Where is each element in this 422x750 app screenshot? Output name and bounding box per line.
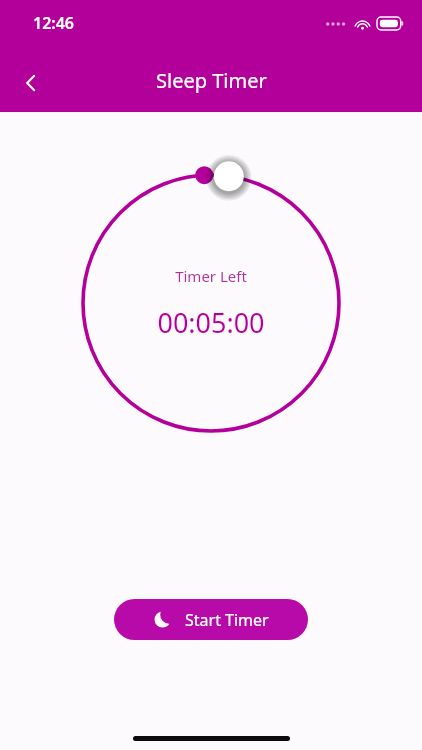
staticText: 12:46 xyxy=(33,12,75,34)
staticText: Sleep Timer xyxy=(156,67,267,94)
staticText: Start Timer xyxy=(185,609,269,631)
staticText: 00:05:00 xyxy=(157,304,265,341)
button[interactable]: Start Timer xyxy=(114,599,308,640)
staticText: Timer Left xyxy=(175,266,247,286)
button[interactable]: Back xyxy=(10,62,52,104)
